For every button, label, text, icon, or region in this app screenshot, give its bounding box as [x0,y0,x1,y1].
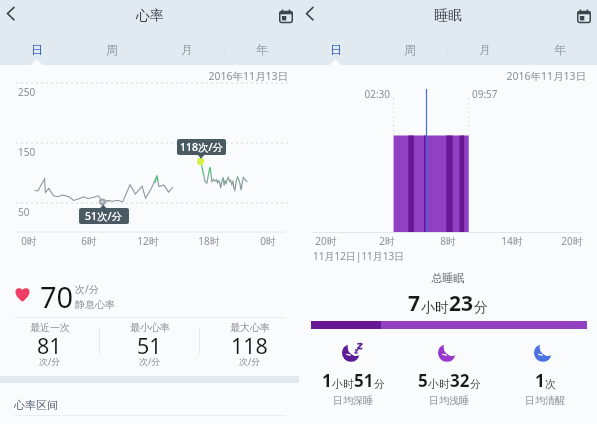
staticText: 睡眠 [434,7,462,25]
staticText: 23 [449,289,474,318]
button[interactable]: 1 [308,342,398,407]
button[interactable]: 月 [447,33,522,65]
button[interactable]: 最近一次 [0,321,99,373]
staticText: 81 [37,331,62,360]
staticText: 14时 [494,234,530,248]
staticText: 最小心率 [130,321,170,334]
staticText: 8时 [430,234,466,248]
staticText: 32 [450,369,470,392]
button[interactable]: Calendar [273,0,299,32]
staticText: 小时 [332,377,354,391]
button[interactable]: 年 [224,33,299,65]
staticText: 次/分 [75,282,99,296]
staticText: 日 [330,42,342,57]
button[interactable]: 月 [149,33,224,65]
staticText: 月 [181,42,193,57]
staticText: 250 [18,85,36,99]
staticText: 51 [137,331,162,360]
button[interactable]: 最大心率 [200,321,299,373]
staticText: 月 [479,42,491,57]
staticText: 18时 [191,234,227,248]
staticText: 1 [322,369,332,392]
staticText: 2016年11月13日 [299,69,586,83]
staticText: 1 [535,369,545,392]
staticText: 周 [106,42,118,57]
button[interactable]: 年 [522,33,597,65]
staticText: 09:57 [472,87,518,101]
staticText: 118 [231,331,268,360]
staticText: 6时 [71,234,107,248]
staticText: 20时 [308,234,344,248]
staticText: 150 [18,145,36,159]
staticText: 分 [374,377,385,391]
staticText: 总睡眠 [299,271,597,285]
staticText: 7 [408,289,421,318]
staticText: 分 [470,377,481,391]
staticText: 2016年11月13日 [0,69,288,83]
button[interactable]: 1 [500,342,590,407]
button[interactable]: Back [299,0,325,32]
staticText: 最近一次 [30,321,70,334]
staticText: 12时 [130,234,166,248]
button[interactable]: Back [0,0,26,32]
staticText: 次/分 [139,355,161,367]
button[interactable]: 周 [74,33,149,65]
staticText: 静息心率 [75,298,115,311]
button[interactable]: 最小心率 [100,321,199,373]
staticText: 周 [404,42,416,57]
staticText: 心率 [136,7,164,25]
staticText: 年 [256,42,268,57]
staticText: 年 [554,42,566,57]
staticText: 70 [40,277,74,316]
staticText: 次/分 [39,355,61,367]
staticText: 20时 [554,234,590,248]
staticText: 次/分 [239,355,261,367]
button[interactable]: 周 [373,33,447,65]
staticText: 51次/分 [85,209,123,223]
staticText: 11月12日|11月13日 [313,249,405,263]
staticText: 50 [18,205,30,219]
staticText: 分 [474,299,488,317]
staticText: 0时 [11,234,47,248]
button[interactable]: 日 [0,33,74,65]
staticText: 0时 [250,234,286,248]
staticText: 次 [545,377,556,391]
staticText: 日均浅睡 [429,394,469,407]
staticText: 最大心率 [230,321,270,334]
staticText: 小时 [428,377,450,391]
button[interactable]: 70 [14,282,115,321]
staticText: 日 [31,42,43,57]
staticText: 心率区间 [14,398,58,412]
staticText: 日均深睡 [333,394,373,407]
button[interactable]: 5 [404,342,494,407]
staticText: 5 [418,369,428,392]
button[interactable]: 日 [299,33,373,65]
button[interactable]: Calendar [571,0,597,32]
staticText: 小时 [421,299,449,317]
staticText: 51 [354,369,374,392]
staticText: 118次/分 [180,140,224,154]
staticText: 02:30 [344,87,390,101]
staticText: 日均清醒 [525,394,565,407]
staticText: 2时 [369,234,405,248]
